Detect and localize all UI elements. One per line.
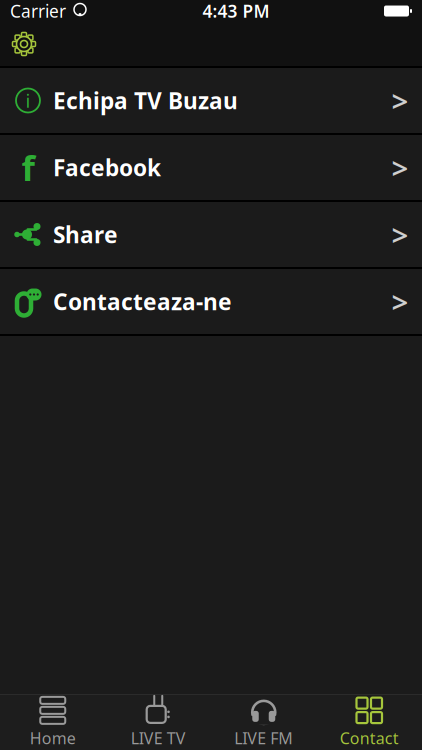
staticText: LIVE FM — [234, 727, 293, 749]
staticText: Contacteaza-ne — [53, 286, 232, 316]
button[interactable]: Home — [0, 695, 105, 750]
staticText: > — [391, 282, 408, 321]
staticText: f — [21, 144, 34, 190]
staticText: Share — [53, 219, 118, 249]
staticText: > — [391, 215, 408, 254]
button[interactable]: i — [0, 68, 422, 135]
button[interactable]: LIVE FM — [211, 695, 316, 750]
staticText: Carrier — [10, 0, 66, 22]
staticText: 4:43 PM — [202, 0, 269, 22]
button[interactable]: Share — [0, 202, 422, 269]
staticText: > — [391, 148, 408, 187]
staticText: Home — [30, 727, 76, 749]
staticText: > — [391, 81, 408, 120]
staticText: LIVE TV — [131, 727, 186, 749]
staticText: Contact — [340, 727, 399, 749]
button[interactable]: LIVE TV — [105, 695, 211, 750]
staticText: i — [25, 88, 30, 113]
button[interactable]: f — [0, 135, 422, 202]
button[interactable]: Contact — [316, 695, 422, 750]
button[interactable]: Settings — [0, 22, 48, 66]
staticText: Echipa TV Buzau — [53, 85, 238, 115]
staticText: Facebook — [53, 152, 161, 182]
button[interactable]: Contacteaza-ne — [0, 269, 422, 336]
